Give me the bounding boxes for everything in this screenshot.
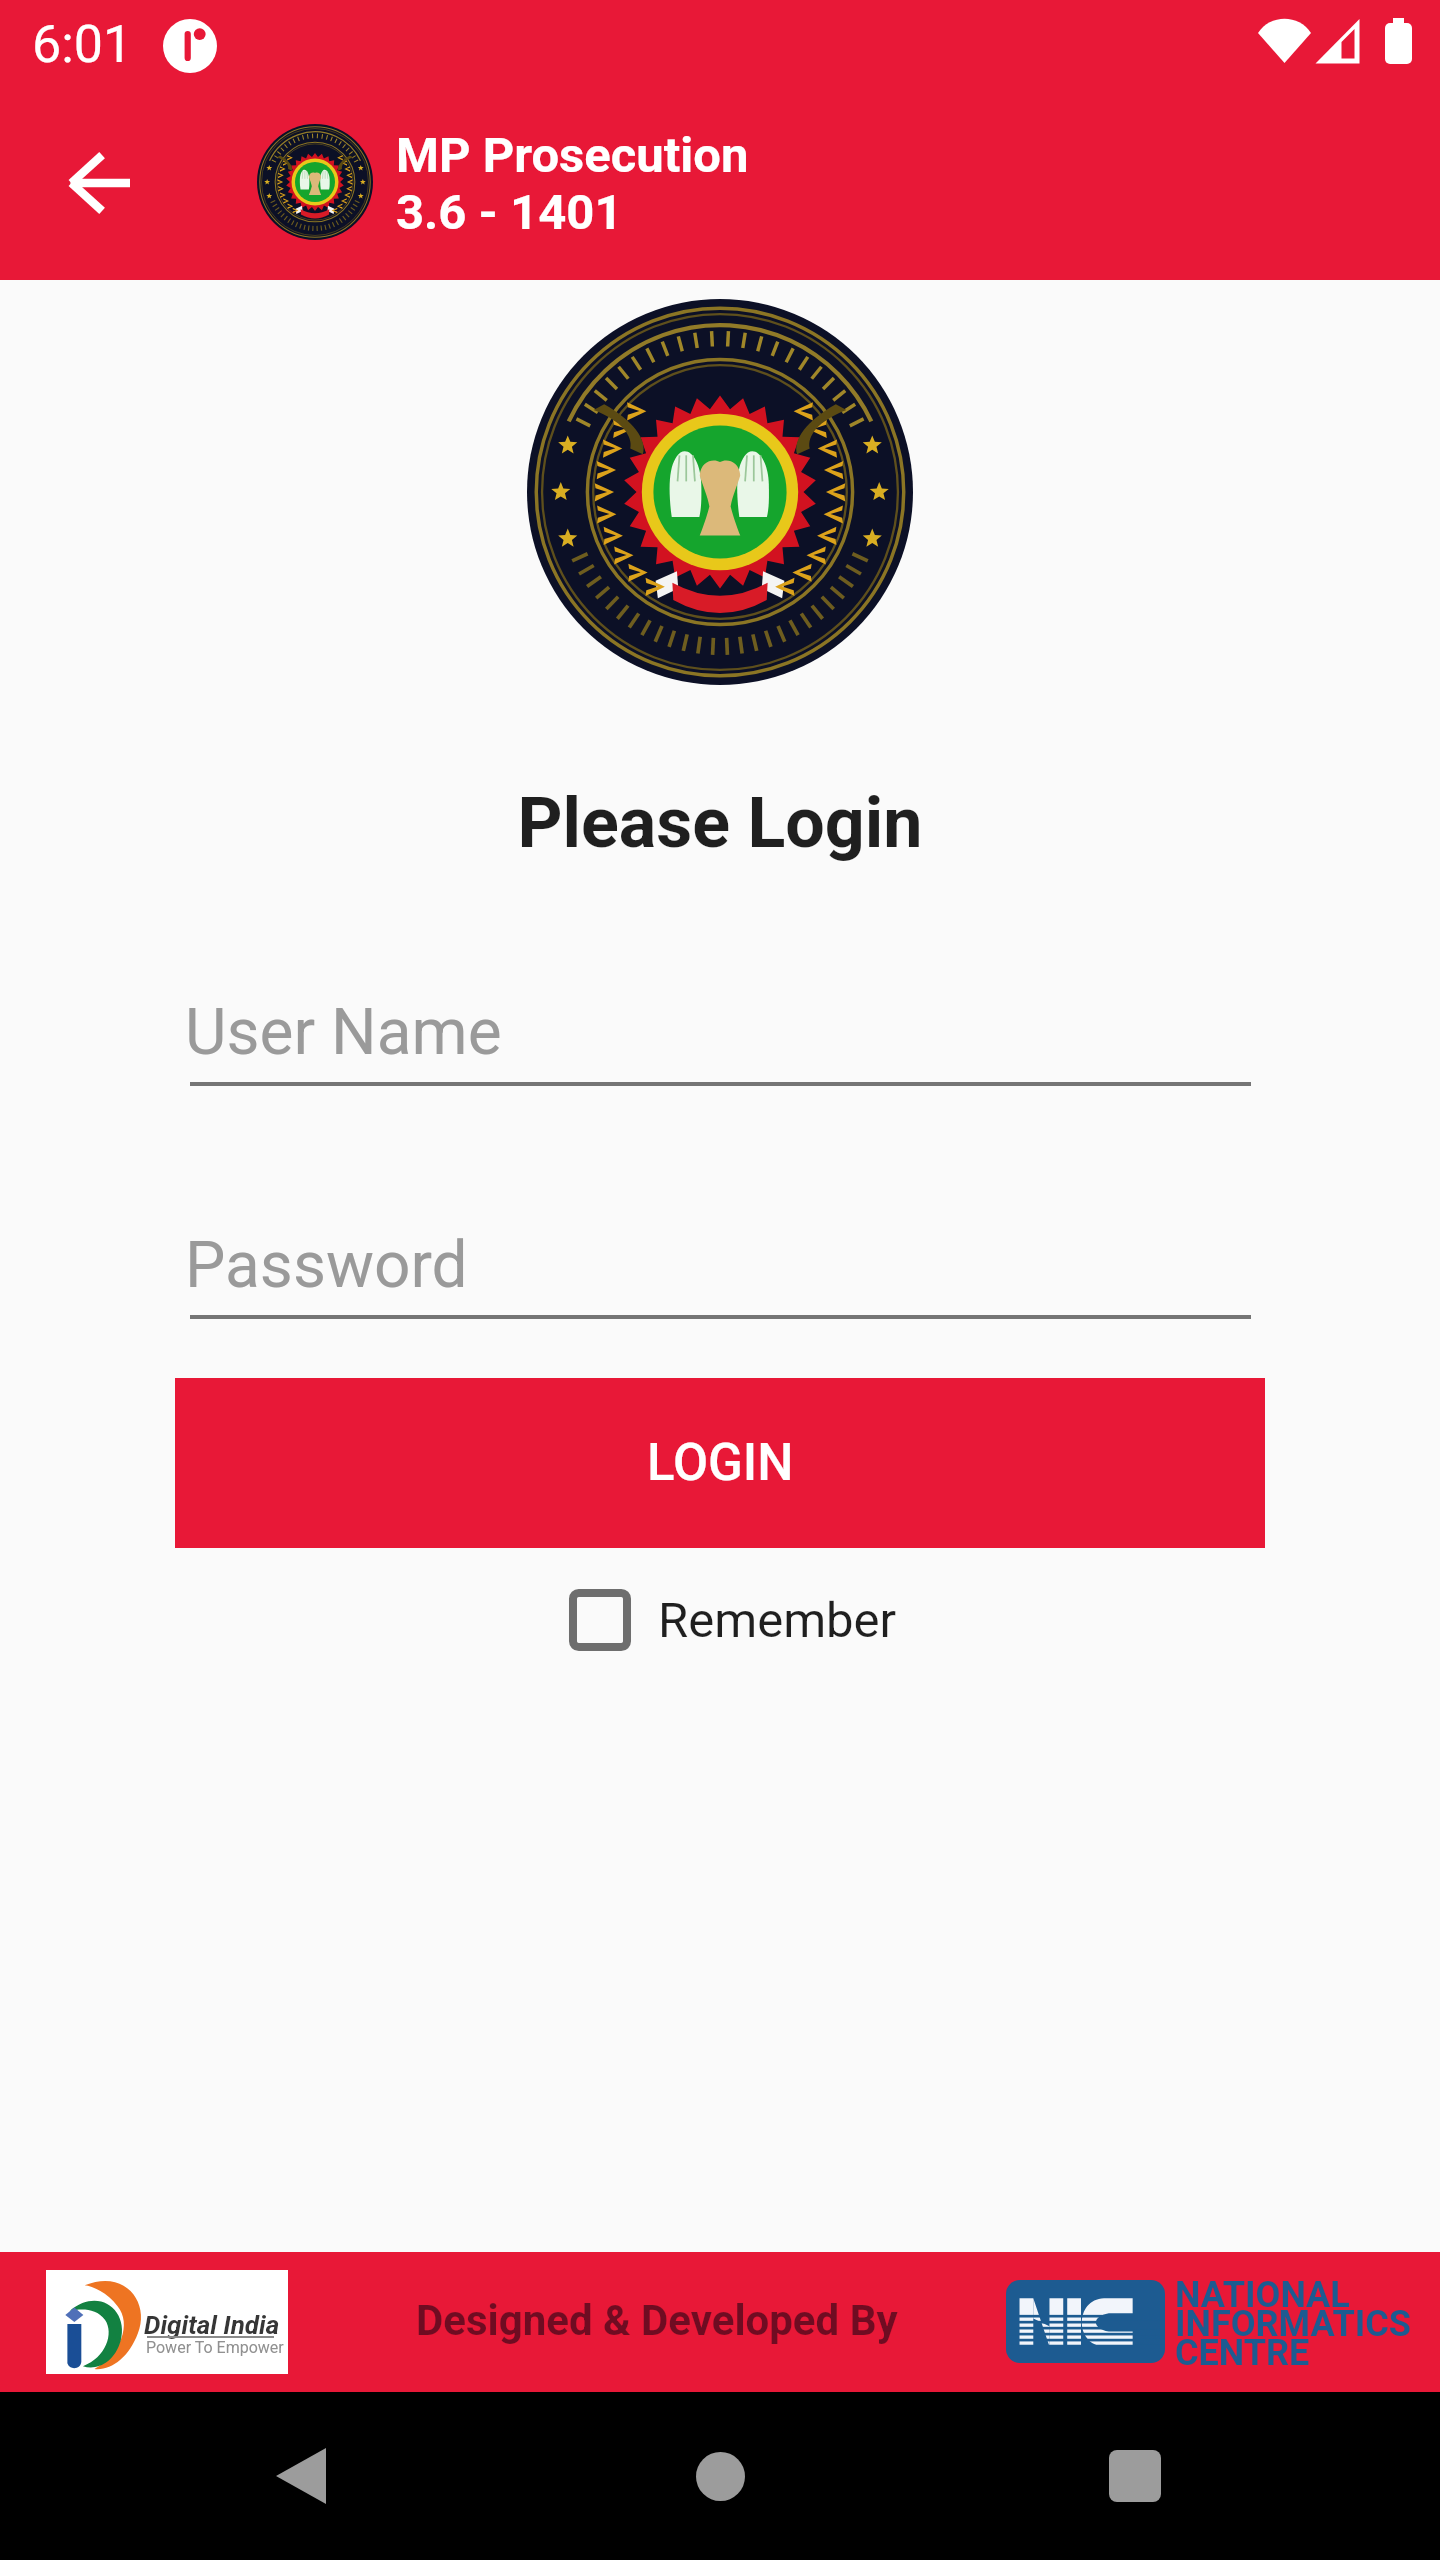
staticText: 6:01: [32, 14, 133, 75]
button[interactable]: Recent apps: [1015, 2392, 1255, 2560]
staticText: User Name: [185, 995, 502, 1070]
staticText: Remember: [658, 1592, 897, 1649]
staticText: Digital India: [144, 2310, 280, 2340]
staticText: 3.6 - 1401: [396, 184, 623, 241]
staticText: LOGIN: [647, 1433, 794, 1493]
button[interactable]: Back: [181, 2392, 421, 2560]
button[interactable]: Remember: [568, 1588, 897, 1652]
button[interactable]: LOGIN: [175, 1378, 1265, 1548]
button[interactable]: Navigate up: [34, 110, 164, 255]
staticText: NATIONAL INFORMATICS CENTRE: [1175, 2274, 1411, 2373]
staticText: Power To Empower: [146, 2338, 284, 2357]
staticText: Designed & Developed By: [416, 2296, 898, 2345]
staticText: Please Login: [0, 782, 1440, 864]
staticText: Password: [185, 1228, 468, 1303]
button[interactable]: Home: [600, 2392, 840, 2560]
staticText: MP Prosecution: [396, 127, 749, 184]
